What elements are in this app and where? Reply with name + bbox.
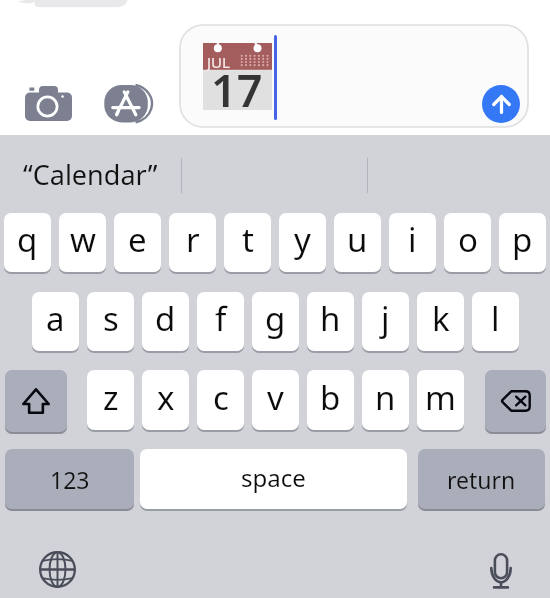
staticText: l: [491, 296, 500, 341]
button[interactable]: Dictate: [478, 548, 524, 594]
staticText: m: [425, 375, 456, 420]
button[interactable]: l: [472, 292, 519, 351]
button[interactable]: Send: [482, 85, 520, 123]
staticText: d: [155, 296, 176, 341]
button[interactable]: g: [252, 292, 299, 351]
button[interactable]: y: [279, 213, 326, 272]
button[interactable]: m: [417, 370, 464, 430]
staticText: g: [265, 296, 286, 341]
staticText: a: [46, 296, 65, 341]
button[interactable]: z: [87, 370, 134, 430]
button[interactable]: b: [307, 370, 354, 430]
staticText: x: [157, 375, 175, 420]
button[interactable]: w: [59, 213, 106, 272]
staticText: q: [17, 217, 38, 262]
button[interactable]: 123: [5, 449, 134, 509]
staticText: 123: [50, 464, 90, 495]
staticText: b: [320, 375, 341, 420]
button[interactable]: p: [499, 213, 546, 272]
staticText: e: [128, 217, 147, 262]
staticText: p: [512, 217, 533, 262]
button[interactable]: o: [444, 213, 491, 272]
button[interactable]: i: [389, 213, 436, 272]
staticText: u: [347, 217, 368, 262]
staticText: c: [213, 375, 229, 420]
staticText: y: [294, 217, 311, 262]
staticText: n: [375, 375, 396, 420]
button[interactable]: q: [4, 213, 51, 272]
button[interactable]: j: [362, 292, 409, 351]
button[interactable]: u: [334, 213, 381, 272]
button[interactable]: x: [142, 370, 189, 430]
staticText: h: [320, 296, 341, 341]
button[interactable]: e: [114, 213, 161, 272]
staticText: z: [103, 375, 119, 420]
button[interactable]: JUL: [180, 25, 528, 127]
button[interactable]: c: [197, 370, 244, 430]
button[interactable]: Backspace: [485, 370, 546, 432]
staticText: w: [70, 217, 96, 262]
button[interactable]: “Calendar”: [0, 135, 180, 203]
button[interactable]: Shift: [5, 370, 67, 432]
button[interactable]: space: [140, 449, 407, 509]
button[interactable]: d: [142, 292, 189, 351]
staticText: space: [241, 461, 306, 494]
button[interactable]: n: [362, 370, 409, 430]
staticText: r: [186, 217, 200, 262]
staticText: return: [447, 464, 516, 495]
button[interactable]: t: [224, 213, 271, 272]
button[interactable]: v: [252, 370, 299, 430]
staticText: “Calendar”: [23, 156, 158, 193]
button[interactable]: App Store: [101, 82, 153, 124]
staticText: 17: [211, 59, 263, 120]
staticText: k: [432, 296, 450, 341]
button[interactable]: f: [197, 292, 244, 351]
staticText: o: [458, 217, 478, 262]
staticText: j: [381, 296, 390, 341]
staticText: JUL: [207, 52, 230, 72]
button[interactable]: k: [417, 292, 464, 351]
button[interactable]: Camera: [20, 82, 78, 126]
staticText: t: [242, 217, 254, 262]
button[interactable]: a: [32, 292, 79, 351]
staticText: s: [103, 296, 119, 341]
staticText: i: [408, 217, 417, 262]
button[interactable]: return: [418, 449, 545, 509]
button[interactable]: Change keyboard: [34, 546, 81, 593]
button[interactable]: s: [87, 292, 134, 351]
staticText: v: [267, 375, 284, 420]
button[interactable]: r: [169, 213, 216, 272]
button[interactable]: h: [307, 292, 354, 351]
staticText: f: [215, 296, 227, 341]
